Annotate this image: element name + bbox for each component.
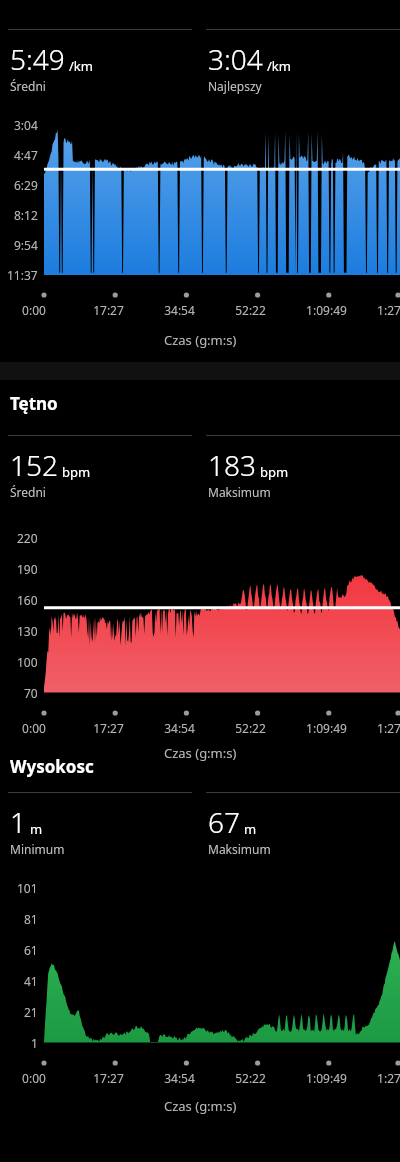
staticText: 34:54 <box>164 720 195 736</box>
staticText: bpm <box>62 463 91 481</box>
staticText: 81 <box>24 911 38 927</box>
staticText: 190 <box>17 561 38 577</box>
staticText: Czas (g:m:s) <box>164 1097 237 1115</box>
staticText: Wysokosc <box>10 755 94 778</box>
staticText: 1:09:49 <box>306 1070 347 1086</box>
staticText: Średni <box>10 78 46 94</box>
staticText: 52:22 <box>235 302 266 318</box>
staticText: 21 <box>24 1004 38 1020</box>
staticText: 130 <box>17 623 38 639</box>
staticText: 220 <box>17 530 38 546</box>
staticText: 1:27:16 <box>377 302 400 318</box>
staticText: 8:12 <box>14 207 38 223</box>
button[interactable]: 67 <box>192 792 400 857</box>
staticText: 52:22 <box>235 720 266 736</box>
staticText: Minimum <box>10 841 65 857</box>
staticText: Maksimum <box>208 484 271 500</box>
staticText: 41 <box>24 973 38 989</box>
staticText: 0:00 <box>22 1070 46 1086</box>
staticText: 1:09:49 <box>306 720 347 736</box>
staticText: 1:27:16 <box>377 1070 400 1086</box>
staticText: m <box>30 820 43 838</box>
button[interactable]: 1 <box>0 792 192 857</box>
button[interactable]: Wysokosc <box>0 753 124 779</box>
staticText: 9:54 <box>14 237 38 253</box>
staticText: 0:00 <box>22 302 46 318</box>
staticText: 52:22 <box>235 1070 266 1086</box>
staticText: 6:29 <box>14 177 38 193</box>
button[interactable]: 152 <box>0 435 192 500</box>
staticText: 183 <box>208 446 256 484</box>
button[interactable]: 5:49 <box>0 29 192 94</box>
staticText: Średni <box>10 484 46 500</box>
staticText: 1 <box>31 1035 38 1051</box>
staticText: 17:27 <box>93 720 124 736</box>
staticText: 67 <box>208 803 240 841</box>
staticText: Najlepszy <box>208 78 262 94</box>
button[interactable]: 3:04 <box>192 29 400 94</box>
staticText: 0:00 <box>22 720 46 736</box>
staticText: 17:27 <box>93 1070 124 1086</box>
staticText: 1:09:49 <box>306 302 347 318</box>
staticText: Czas (g:m:s) <box>164 331 237 349</box>
staticText: 101 <box>17 880 38 896</box>
staticText: 3:04 <box>208 40 263 78</box>
staticText: 4:47 <box>14 147 38 163</box>
button[interactable]: 183 <box>192 435 400 500</box>
staticText: 160 <box>17 592 38 608</box>
staticText: 1 <box>10 803 26 841</box>
staticText: m <box>244 820 257 838</box>
staticText: 70 <box>24 685 38 701</box>
staticText: 11:37 <box>7 267 38 283</box>
staticText: 152 <box>10 446 58 484</box>
staticText: /km <box>267 57 291 75</box>
staticText: 61 <box>24 942 38 958</box>
staticText: 34:54 <box>164 1070 195 1086</box>
staticText: Maksimum <box>208 841 271 857</box>
staticText: Czas (g:m:s) <box>164 744 237 762</box>
staticText: 100 <box>17 654 38 670</box>
staticText: 3:04 <box>14 117 38 133</box>
staticText: 34:54 <box>164 302 195 318</box>
button[interactable]: Tętno <box>10 392 58 415</box>
staticText: 17:27 <box>93 302 124 318</box>
staticText: 5:49 <box>10 40 65 78</box>
staticText: /km <box>69 57 93 75</box>
staticText: 1:27:16 <box>377 720 400 736</box>
staticText: bpm <box>260 463 289 481</box>
